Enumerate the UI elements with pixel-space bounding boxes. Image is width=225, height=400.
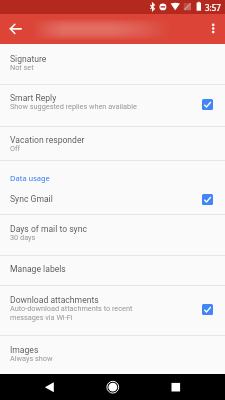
staticText: Smart Reply (10, 93, 57, 103)
button[interactable]: Back (31, 374, 68, 400)
button[interactable]: Manage labels (0, 256, 225, 285)
staticText: Download attachments (10, 295, 99, 305)
staticText: Manage labels (10, 264, 66, 274)
staticText: Signature (10, 54, 47, 64)
button[interactable]: More options (195, 14, 225, 44)
button[interactable]: Vacation responder (0, 127, 225, 160)
staticText: Images (10, 345, 39, 355)
button[interactable]: Days of mail to sync (0, 215, 225, 255)
staticText: Show suggested replies when available (10, 102, 137, 111)
staticText: Data usage (10, 173, 50, 183)
staticText: 3:57 (205, 2, 221, 13)
staticText: Not set (10, 63, 34, 72)
staticText: 30 days (10, 233, 36, 242)
button[interactable]: Smart Reply (0, 85, 225, 126)
button[interactable]: Images (0, 336, 225, 374)
staticText: Sync Gmail (10, 194, 53, 204)
button[interactable]: Recent apps (157, 374, 194, 400)
staticText: Off (10, 144, 21, 153)
staticText: Auto-download attachments to recent mess… (10, 304, 152, 322)
staticText: Vacation responder (10, 135, 85, 145)
button[interactable]: Home (94, 374, 131, 400)
button[interactable]: Download attachments (0, 286, 225, 335)
staticText: Days of mail to sync (10, 224, 87, 234)
button[interactable]: Signature (0, 44, 225, 84)
staticText: Always show (10, 354, 53, 363)
button[interactable]: Navigate up (0, 14, 30, 44)
button[interactable]: Sync Gmail (0, 187, 225, 214)
